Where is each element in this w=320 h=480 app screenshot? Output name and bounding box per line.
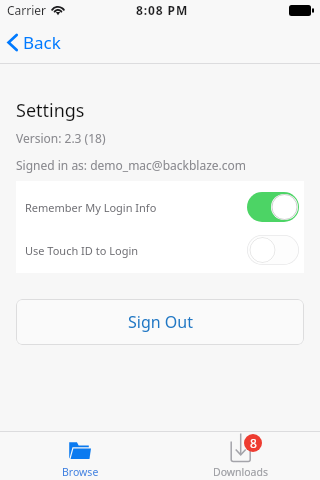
button[interactable]: Downloads [160, 431, 320, 480]
staticText: Carrier [7, 2, 47, 18]
staticText: Sign Out [128, 311, 193, 333]
staticText: 8 [250, 435, 257, 451]
staticText: 8:08 PM [136, 2, 189, 18]
button[interactable]: Browse [0, 431, 160, 480]
staticText: Signed in as: demo_mac@backblaze.com [16, 157, 247, 173]
staticText: Browse [62, 465, 99, 479]
button[interactable]: Toggle on [247, 192, 299, 222]
button[interactable]: Sign Out [16, 299, 304, 345]
button[interactable]: Back [7, 20, 61, 64]
staticText: Downloads [213, 465, 268, 479]
staticText: Remember My Login Info [25, 200, 157, 215]
button[interactable]: Use Touch ID to Login [16, 227, 304, 273]
other: Browse [69, 442, 91, 459]
staticText: Use Touch ID to Login [25, 243, 139, 258]
staticText: Version: 2.3 (18) [16, 130, 106, 146]
other: Downloads [227, 433, 262, 462]
button[interactable]: Toggle off [247, 235, 299, 265]
staticText: Settings [16, 98, 85, 123]
button[interactable]: Remember My Login Info [16, 181, 304, 227]
staticText: Back [23, 31, 61, 54]
